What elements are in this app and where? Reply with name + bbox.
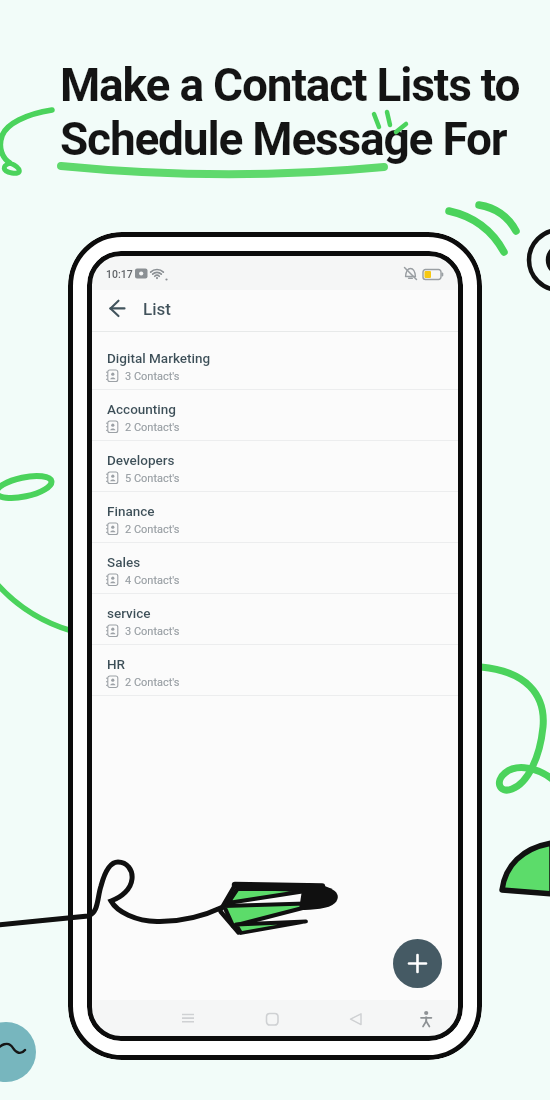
staticText: service [107,605,151,621]
staticText: Digital Marketing [107,350,211,366]
button[interactable] [92,650,458,695]
button[interactable] [92,395,458,440]
staticText: 4 Contact's [125,574,180,587]
staticText: 2 Contact's [125,676,180,689]
staticText: 2 Contact's [125,421,180,434]
staticText: 3 Contact's [125,370,180,383]
staticText: Finance [107,503,155,519]
staticText: 2 Contact's [125,523,180,536]
staticText: Sales [107,554,141,570]
button[interactable] [393,939,442,988]
button[interactable] [102,300,130,326]
button[interactable] [92,497,458,542]
button[interactable] [92,344,458,389]
staticText: Developers [107,452,175,468]
button[interactable] [410,1006,442,1034]
button[interactable] [92,446,458,491]
staticText: 10:17 [106,268,133,280]
staticText: 5 Contact's [125,472,180,485]
button[interactable] [172,1006,204,1034]
button[interactable] [256,1006,288,1034]
staticText: 3 Contact's [125,625,180,638]
staticText: Make a Contact Lists to [60,58,520,112]
staticText: Accounting [107,401,176,417]
button[interactable] [92,599,458,644]
button[interactable] [92,548,458,593]
staticText: List [143,299,171,319]
button[interactable] [339,1006,371,1034]
staticText: HR [107,656,126,672]
staticText: Schedule Message For [60,112,507,166]
